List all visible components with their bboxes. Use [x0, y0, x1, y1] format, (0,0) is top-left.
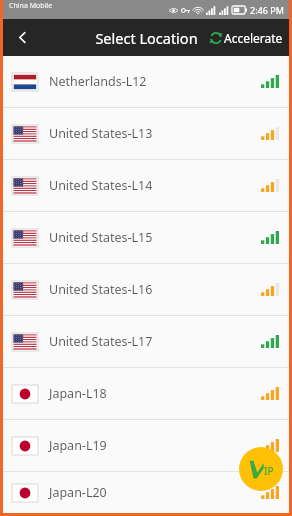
button[interactable]: Accelerate [203, 19, 289, 56]
staticText: IP [264, 464, 274, 478]
staticText: Japan-L19 [49, 437, 261, 454]
button[interactable]: United States-L14 [3, 160, 289, 211]
staticText: United States-L15 [49, 229, 261, 246]
button[interactable]: United States-L16 [3, 264, 289, 315]
staticText: United States-L16 [49, 281, 261, 298]
button[interactable]: Japan-L18 [3, 368, 289, 419]
button[interactable]: Japan-L20 [3, 472, 289, 513]
staticText: United States-L13 [49, 125, 261, 142]
staticText: United States-L14 [49, 177, 261, 194]
button[interactable]: Japan-L19 [3, 420, 289, 471]
staticText: China Mobile [9, 1, 53, 11]
staticText: Japan-L18 [49, 385, 261, 402]
staticText: Select Location [95, 28, 198, 48]
staticText: United States-L17 [49, 333, 261, 350]
button[interactable]: United States-L15 [3, 212, 289, 263]
button[interactable]: United States-L13 [3, 108, 289, 159]
staticText: 2:46 PM [250, 4, 284, 16]
button[interactable]: VIP [239, 447, 283, 491]
staticText: Japan-L20 [49, 484, 261, 501]
staticText: Accelerate [224, 30, 283, 46]
button[interactable]: Netherlands-L12 [3, 56, 289, 107]
button[interactable]: United States-L17 [3, 316, 289, 367]
button[interactable]: Back [3, 19, 41, 56]
staticText: Netherlands-L12 [49, 73, 261, 90]
